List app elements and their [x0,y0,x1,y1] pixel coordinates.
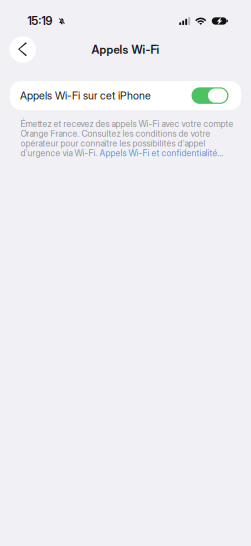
staticText: Émettez et recevez des appels Wi-Fi avec… [20,119,233,129]
staticText: 15:19 [27,14,52,28]
staticText: Appels Wi-Fi et confidentialité… [99,148,223,158]
button[interactable]: Appels Wi-Fi sur cet iPhone [10,81,241,110]
staticText: opérateur pour connaître les possibilité… [20,138,205,149]
staticText: d'urgence via Wi-Fi. [20,148,99,158]
staticText: Appels Wi-Fi [91,43,159,56]
staticText: Orange France. Consultez les conditions … [20,128,210,139]
button[interactable]: Appels Wi-Fi et confidentialité… [99,148,223,158]
staticText: Appels Wi-Fi sur cet iPhone [20,89,151,102]
button[interactable]: Back [9,36,36,63]
